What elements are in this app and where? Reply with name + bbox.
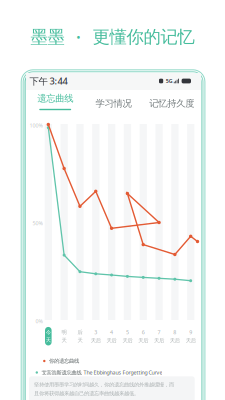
staticText: 天后 bbox=[154, 337, 164, 344]
staticText: 且你将获得越来越自己的遗忘率曲线越来越低。 bbox=[34, 390, 139, 397]
staticText: 今 bbox=[46, 329, 51, 336]
staticText: 明 bbox=[62, 329, 67, 335]
staticText: 后 bbox=[77, 329, 82, 335]
staticText: · bbox=[76, 25, 81, 48]
button[interactable]: 学习情况 bbox=[84, 91, 142, 115]
staticText: 50% bbox=[32, 220, 42, 227]
staticText: 天 bbox=[62, 337, 67, 343]
staticText: 0% bbox=[35, 318, 42, 325]
staticText: 天后 bbox=[122, 337, 132, 344]
button[interactable]: 记忆持久度 bbox=[143, 91, 201, 115]
staticText: 墨墨 bbox=[30, 26, 64, 48]
button[interactable]: 今 bbox=[43, 326, 53, 346]
staticText: 4 bbox=[110, 329, 113, 336]
staticText: 100% bbox=[29, 122, 42, 129]
staticText: 更懂你的记忆 bbox=[92, 26, 194, 48]
staticText: 天后 bbox=[186, 337, 196, 344]
staticText: 学习情况 bbox=[95, 98, 131, 109]
staticText: 5G bbox=[166, 77, 173, 85]
button[interactable]: 遗忘曲线 bbox=[26, 91, 84, 115]
staticText: 8 bbox=[173, 329, 176, 336]
staticText: 记忆持久度 bbox=[149, 98, 194, 109]
staticText: 艾宾浩斯遗忘曲线 The Ebbinghaus Forgetting Curve bbox=[41, 369, 162, 376]
staticText: 天后 bbox=[170, 337, 180, 344]
staticText: 下午 3:44 bbox=[29, 75, 67, 87]
staticText: 天后 bbox=[107, 337, 117, 344]
staticText: 天 bbox=[77, 337, 82, 343]
staticText: 5 bbox=[126, 329, 129, 336]
staticText: 坚持使用墨墨学习的时间越久，你的遗忘曲线的外推越缓慢，而 bbox=[34, 381, 174, 388]
staticText: 遗忘曲线 bbox=[37, 93, 73, 104]
staticText: 天后 bbox=[138, 337, 148, 344]
staticText: 3 bbox=[94, 329, 97, 336]
staticText: 天 bbox=[46, 337, 51, 343]
staticText: 6 bbox=[142, 329, 145, 336]
staticText: 你的遗忘曲线 bbox=[49, 358, 79, 364]
staticText: 7 bbox=[157, 329, 160, 336]
staticText: 9 bbox=[189, 329, 192, 336]
staticText: 天后 bbox=[91, 337, 101, 344]
